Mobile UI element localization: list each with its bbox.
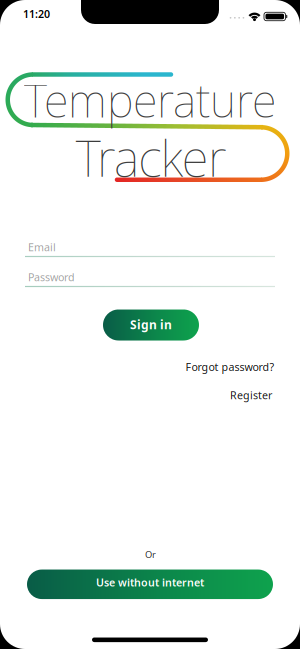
button[interactable]: Register [230,388,272,402]
staticText: Sign in [130,317,172,333]
button[interactable]: Forgot password? [185,360,274,374]
staticText: Temperature [24,70,276,130]
staticText: Forgot password? [185,360,274,374]
button[interactable]: Use without internet [27,569,273,599]
staticText: Email [28,240,56,254]
staticText: Register [230,388,272,402]
staticText: 11:20 [23,7,50,21]
staticText: Or [145,548,156,561]
staticText: Password [28,270,75,284]
staticText: Use without internet [96,575,204,589]
staticText: Tracker [76,125,227,190]
button[interactable]: Sign in [103,309,199,340]
